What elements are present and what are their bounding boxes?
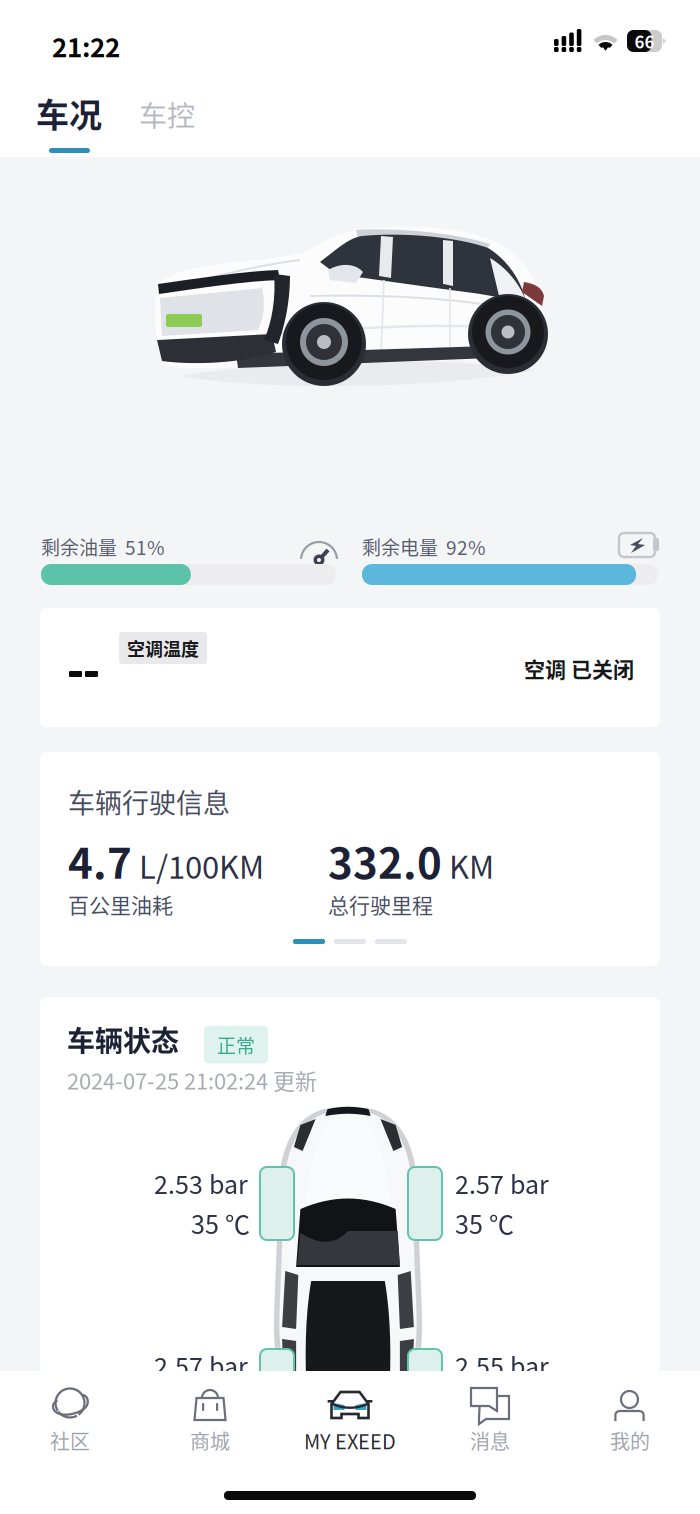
staticText: 车辆状态 bbox=[67, 1019, 179, 1059]
button[interactable]: 社区 bbox=[0, 1374, 140, 1464]
button[interactable]: 空调温度 bbox=[40, 608, 660, 727]
button[interactable]: 消息 bbox=[420, 1374, 560, 1464]
staticText: 2.57 bar bbox=[154, 1347, 248, 1383]
staticText: 商城 bbox=[190, 1426, 230, 1455]
staticText: 66 bbox=[634, 29, 654, 53]
staticText: 35 ℃ bbox=[455, 1205, 514, 1241]
staticText: 2.55 bar bbox=[455, 1347, 549, 1383]
staticText: 车辆行驶信息 bbox=[68, 782, 230, 821]
staticText: 百公里油耗 bbox=[68, 889, 173, 919]
staticText: 21:22 bbox=[52, 27, 120, 65]
staticText: 2024-07-25 21:02:24 更新 bbox=[67, 1064, 317, 1096]
button[interactable]: 车控 bbox=[130, 70, 206, 148]
staticText: 车况 bbox=[36, 89, 102, 137]
staticText: 空调 已关闭 bbox=[524, 653, 634, 683]
staticText: 剩余油量 51% bbox=[41, 533, 164, 560]
staticText: 4.7 bbox=[68, 830, 132, 891]
staticText: L/100KM bbox=[139, 843, 264, 888]
staticText: 332.0 bbox=[328, 830, 442, 891]
staticText: 剩余电量 92% bbox=[362, 533, 485, 560]
staticText: 35 ℃ bbox=[191, 1205, 250, 1241]
staticText: 2.57 bar bbox=[455, 1165, 549, 1201]
button[interactable]: 车况 bbox=[28, 70, 112, 148]
staticText: 空调温度 bbox=[127, 635, 199, 661]
staticText: 消息 bbox=[470, 1426, 510, 1455]
staticText: 社区 bbox=[50, 1426, 90, 1455]
staticText: 车控 bbox=[139, 94, 195, 134]
staticText: 总行驶里程 bbox=[328, 889, 433, 919]
button[interactable]: 商城 bbox=[140, 1374, 280, 1464]
button[interactable]: 我的 bbox=[560, 1374, 700, 1464]
staticText: MY EXEED bbox=[304, 1426, 396, 1455]
staticText: 我的 bbox=[610, 1426, 650, 1455]
staticText: 正常 bbox=[217, 1031, 255, 1058]
staticText: 2.53 bar bbox=[154, 1165, 248, 1201]
staticText: KM bbox=[449, 843, 494, 888]
button[interactable]: MY EXEED bbox=[280, 1374, 420, 1464]
